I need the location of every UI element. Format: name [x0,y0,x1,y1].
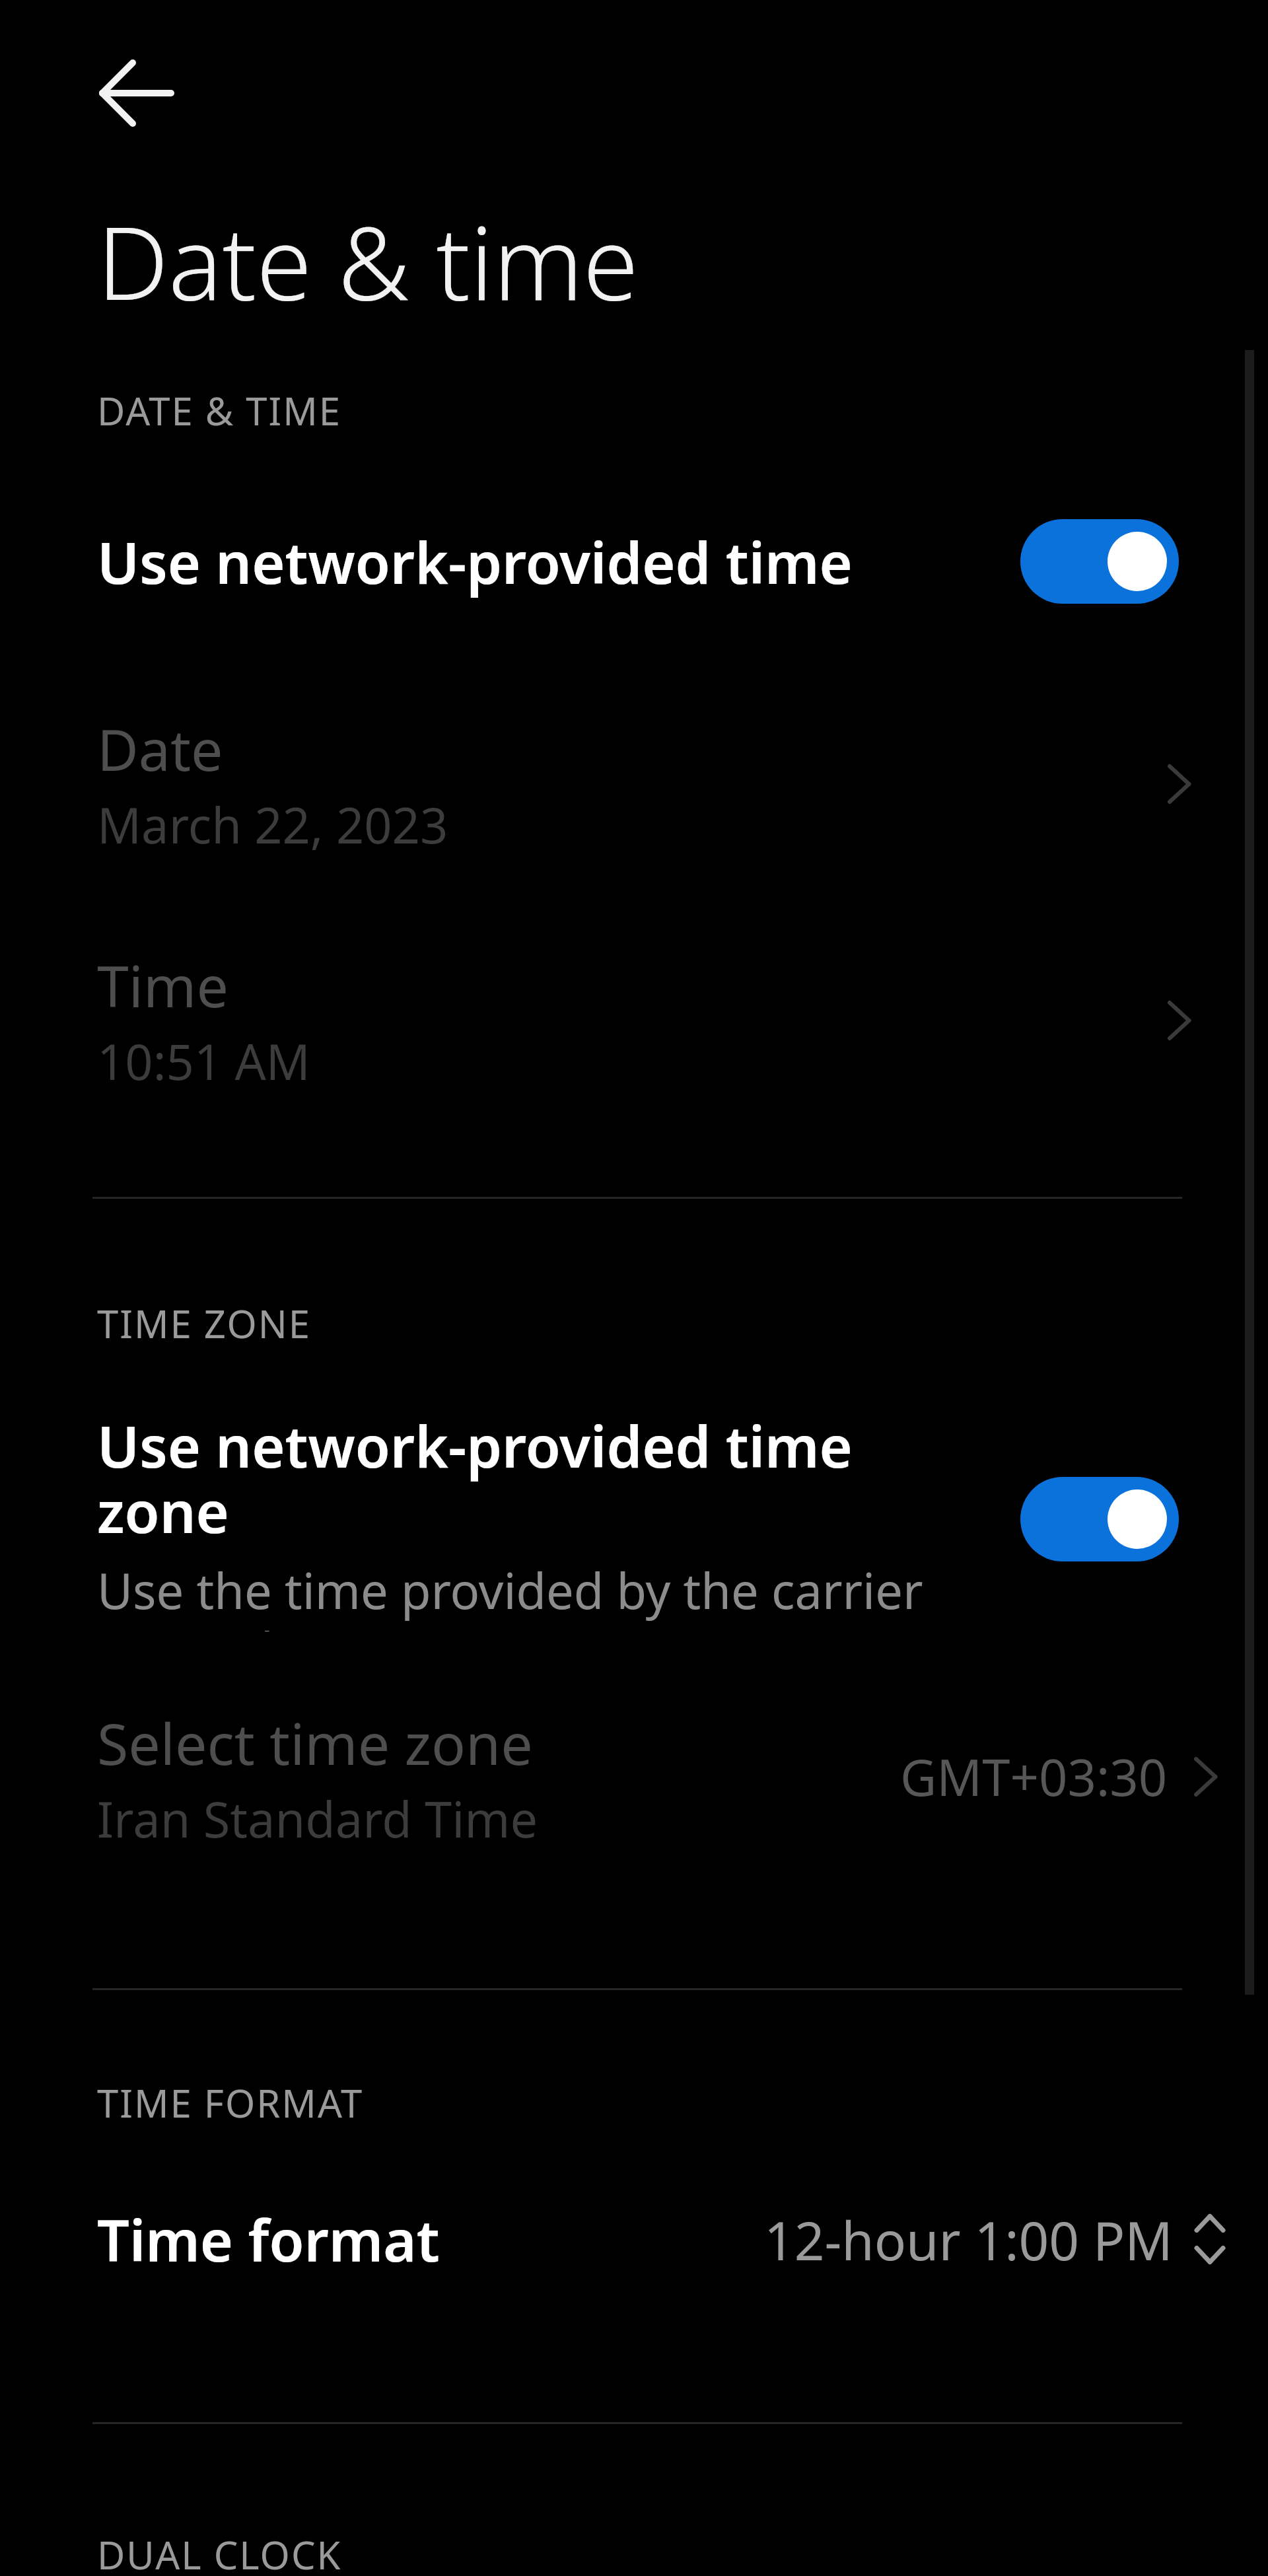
button[interactable]: Back [73,29,201,157]
staticText: Use network-provided time zone [97,1407,975,1550]
staticText: TIME FORMAT [97,2077,364,2129]
staticText: 10:51 AM [97,1028,310,1094]
staticText: Time format [97,2201,764,2278]
button[interactable]: Toggle on [1020,519,1179,604]
staticText: DUAL CLOCK [97,2528,342,2576]
staticText: Use the time provided by the carrier net… [97,1557,975,1631]
staticText: TIME ZONE [97,1297,312,1349]
staticText: Iran Standard Time [97,1785,538,1849]
button[interactable]: Use network-provided time [0,502,1268,621]
staticText: March 22, 2023 [97,791,448,858]
button[interactable]: Time format [0,2180,1268,2299]
staticText: Date [97,710,223,787]
staticText: GMT+03:30 [900,1742,1168,1811]
staticText: 12-hour 1:00 PM [764,2203,1173,2275]
staticText: DATE & TIME [97,384,342,437]
button[interactable]: Toggle on [1020,1477,1179,1561]
staticText: Select time zone [97,1704,533,1781]
button[interactable]: Date [0,708,1268,860]
button[interactable]: Time [0,945,1268,1096]
button[interactable]: Select time zone [0,1704,1268,1849]
staticText: Time [97,947,229,1024]
staticText: Date & time [97,193,639,330]
staticText: Use network-provided time [97,523,1020,600]
button[interactable]: Use network-provided time zone [0,1407,1268,1631]
